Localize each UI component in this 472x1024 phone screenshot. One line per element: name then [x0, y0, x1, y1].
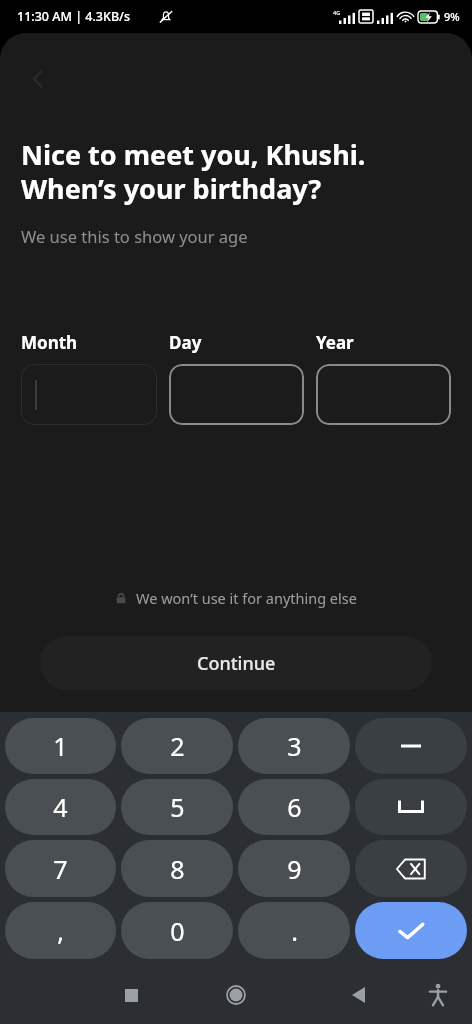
staticText: 7 [53, 852, 68, 886]
button[interactable] [316, 364, 451, 425]
staticText: We won’t use it for anything else [136, 588, 357, 608]
button[interactable]: Backspace [355, 840, 467, 897]
button[interactable]: Space [355, 779, 467, 835]
staticText: 2 [170, 729, 185, 763]
button[interactable]: 8 [121, 840, 233, 897]
staticText: 9 [287, 852, 302, 886]
button[interactable]: , [5, 902, 116, 959]
staticText: 3 [287, 729, 302, 763]
button[interactable]: Continue [40, 636, 432, 690]
button[interactable] [169, 364, 304, 425]
button[interactable]: Dash [355, 718, 467, 774]
staticText: Continue [197, 651, 276, 676]
button[interactable]: 9 [238, 840, 350, 897]
staticText: 8 [170, 852, 185, 886]
button[interactable] [21, 364, 157, 425]
staticText: 4G [333, 9, 341, 16]
staticText: Month [21, 331, 78, 354]
staticText: 6 [287, 790, 302, 824]
button[interactable]: . [238, 902, 350, 959]
button[interactable]: 6 [238, 779, 350, 835]
button[interactable]: 4 [5, 779, 116, 835]
button[interactable]: 0 [121, 902, 233, 959]
staticText: 9% [444, 9, 460, 24]
staticText: 0 [170, 914, 185, 948]
staticText: Year [316, 331, 354, 354]
button[interactable]: Enter [355, 902, 467, 959]
staticText: 4 [53, 790, 68, 824]
staticText: We use this to show your age [21, 225, 248, 247]
staticText: 1 [53, 729, 68, 763]
button[interactable]: Home [210, 969, 262, 1021]
staticText: , [57, 914, 64, 948]
button[interactable]: Accessibility [412, 969, 464, 1021]
staticText: . [291, 914, 298, 948]
button[interactable]: 7 [5, 840, 116, 897]
staticText: Nice to meet you, Khushi. When’s your bi… [21, 136, 366, 207]
staticText: Day [169, 331, 202, 354]
button[interactable]: 1 [5, 718, 116, 774]
staticText: 5 [170, 790, 185, 824]
button[interactable]: 5 [121, 779, 233, 835]
button[interactable]: 3 [238, 718, 350, 774]
staticText: 11:30 AM | 4.3KB/s [17, 8, 130, 25]
button[interactable]: 2 [121, 718, 233, 774]
button[interactable]: Back [332, 969, 384, 1021]
button[interactable]: Recent apps [105, 969, 157, 1021]
